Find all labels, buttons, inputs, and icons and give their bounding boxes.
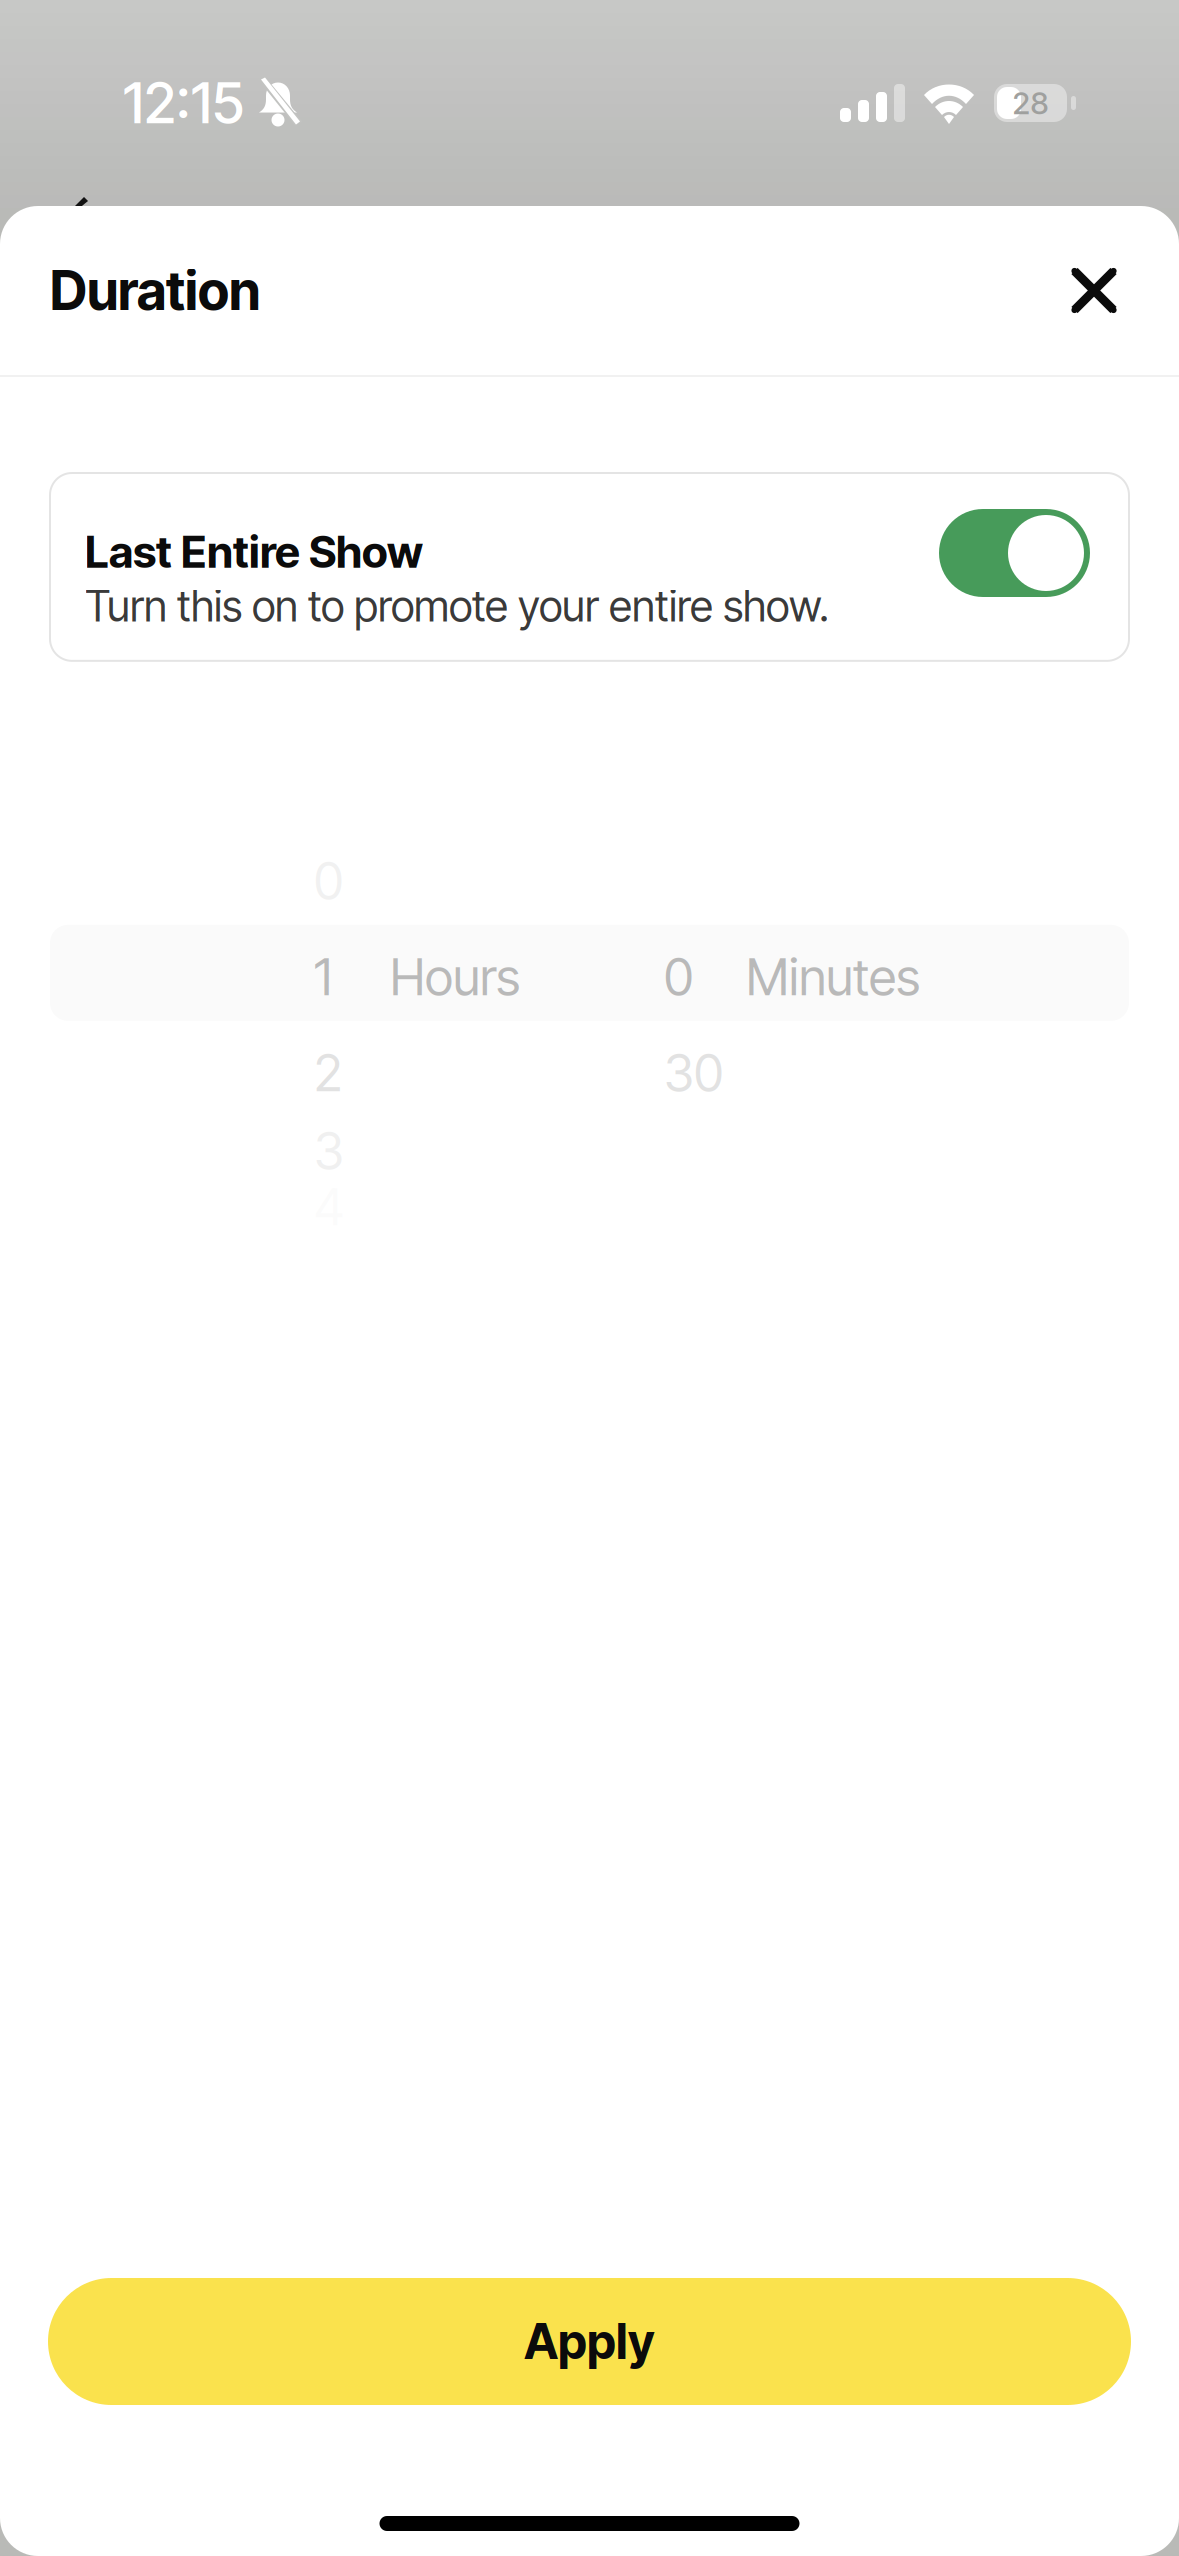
staticText: 0 — [314, 850, 343, 911]
staticText: 28 — [1012, 84, 1048, 121]
button[interactable]: Apply — [0, 2278, 1179, 2405]
staticText: 1 — [314, 946, 332, 1007]
staticText: Hours — [390, 946, 520, 1007]
staticText: Duration — [50, 258, 261, 323]
staticText: 30 — [664, 1042, 723, 1103]
staticText: Minutes — [746, 946, 920, 1007]
button[interactable]: Close — [1046, 242, 1142, 338]
button[interactable]: Last Entire Show — [0, 473, 1179, 661]
staticText: 0 — [664, 946, 693, 1007]
staticText: 12:15 — [123, 69, 244, 137]
staticText: Last Entire Show — [85, 525, 423, 578]
staticText: 3 — [314, 1120, 344, 1181]
staticText: Apply — [524, 2312, 655, 2371]
staticText: 2 — [314, 1042, 342, 1103]
staticText: Turn this on to promote your entire show… — [85, 580, 829, 632]
